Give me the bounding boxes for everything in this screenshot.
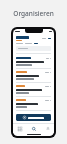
button[interactable]	[13, 97, 54, 110]
button[interactable]	[13, 83, 54, 96]
button[interactable]: Suchen	[27, 124, 41, 133]
button[interactable]	[13, 69, 54, 82]
button[interactable]: Dokumente	[13, 124, 27, 133]
button[interactable]	[13, 55, 54, 68]
staticText: Organisieren	[13, 9, 54, 18]
button[interactable]: Profil	[41, 124, 54, 133]
button[interactable]	[16, 114, 51, 121]
button[interactable]	[16, 46, 51, 51]
